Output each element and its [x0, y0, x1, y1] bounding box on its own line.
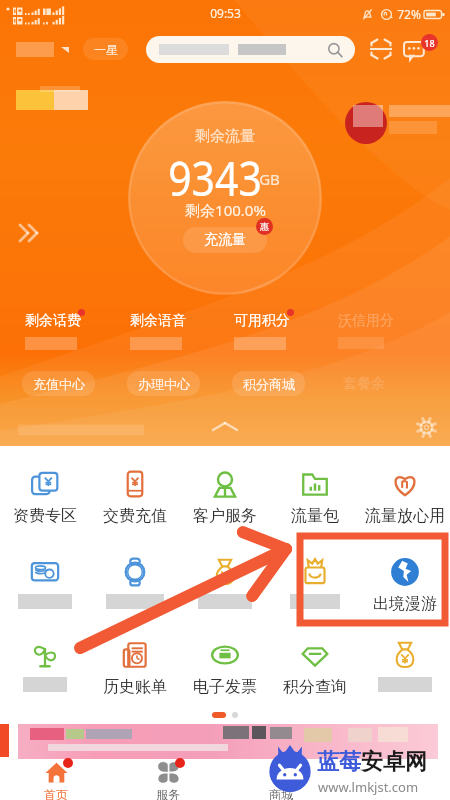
staticText: 套餐余: [343, 375, 385, 393]
staticText: 商城: [269, 787, 293, 800]
staticText: 首页: [44, 787, 68, 800]
staticText: 剩余100.0%: [185, 200, 266, 220]
staticText: 充值中心: [33, 376, 85, 392]
button[interactable]: Service: [270, 558, 360, 609]
staticText: 资费专区: [13, 506, 77, 526]
staticText: 积分商城: [243, 376, 295, 392]
button[interactable]: 充流量: [183, 227, 267, 253]
staticText: 可用积分: [234, 312, 290, 330]
button[interactable]: 积分商城: [232, 371, 305, 396]
button[interactable]: 流量放心用: [360, 470, 450, 526]
staticText: 18: [424, 37, 435, 49]
staticText: 历史账单: [103, 677, 167, 697]
button[interactable]: Promotion: [18, 724, 438, 759]
button[interactable]: Messages: [404, 34, 438, 64]
button[interactable]: 首页: [0, 761, 112, 800]
button[interactable]: Service: [180, 558, 270, 609]
staticText: 72%: [397, 6, 421, 22]
button[interactable]: 服务: [112, 761, 224, 800]
button[interactable]: 积分查询: [270, 641, 360, 697]
button[interactable]: Service: [0, 558, 90, 609]
button[interactable]: 可用积分: [234, 312, 338, 350]
staticText: www.lmkjst.com: [318, 778, 419, 796]
staticText: 剩余语音: [130, 312, 186, 330]
button[interactable]: 电子发票: [180, 641, 270, 697]
staticText: 蓝莓: [317, 748, 361, 776]
staticText: 一星: [94, 42, 118, 57]
button[interactable]: 剩余语音: [130, 312, 234, 350]
staticText: 出境漫游: [373, 594, 437, 614]
staticText: 惠: [260, 221, 269, 232]
button[interactable]: 交费充值: [90, 470, 180, 526]
staticText: 交费充值: [103, 506, 167, 526]
staticText: 剩余话费: [25, 312, 81, 330]
button[interactable]: 历史账单: [90, 641, 180, 697]
staticText: 流量放心用: [365, 506, 445, 526]
button[interactable]: Search: [146, 36, 355, 63]
staticText: 积分查询: [283, 677, 347, 697]
staticText: 安卓网: [361, 748, 427, 776]
staticText: 09:53: [210, 5, 241, 21]
button[interactable]: Service: [90, 558, 180, 609]
staticText: 充流量: [204, 231, 246, 249]
staticText: 流量包: [291, 506, 339, 526]
button[interactable]: 商城: [224, 761, 337, 800]
staticText: 剩余流量: [195, 127, 255, 146]
button[interactable]: 客户服务: [180, 470, 270, 526]
button[interactable]: Location: [16, 42, 69, 57]
button[interactable]: Service: [360, 641, 450, 692]
staticText: 沃信用分: [338, 312, 394, 330]
staticText: 客户服务: [193, 506, 257, 526]
button[interactable]: 出境漫游: [360, 558, 450, 614]
staticText: 电子发票: [193, 677, 257, 697]
button[interactable]: 充值中心: [22, 371, 95, 396]
button[interactable]: Scan: [367, 35, 395, 63]
staticText: GB: [259, 169, 280, 189]
button[interactable]: 一星: [83, 38, 128, 60]
button[interactable]: 资费专区: [0, 470, 90, 526]
button[interactable]: 办理中心: [127, 371, 200, 396]
staticText: 办理中心: [138, 376, 190, 392]
button[interactable]: 流量包: [270, 470, 360, 526]
staticText: 服务: [156, 787, 180, 800]
button[interactable]: Service: [0, 641, 90, 692]
button[interactable]: 剩余话费: [25, 312, 130, 350]
staticText: 9343: [167, 146, 263, 200]
